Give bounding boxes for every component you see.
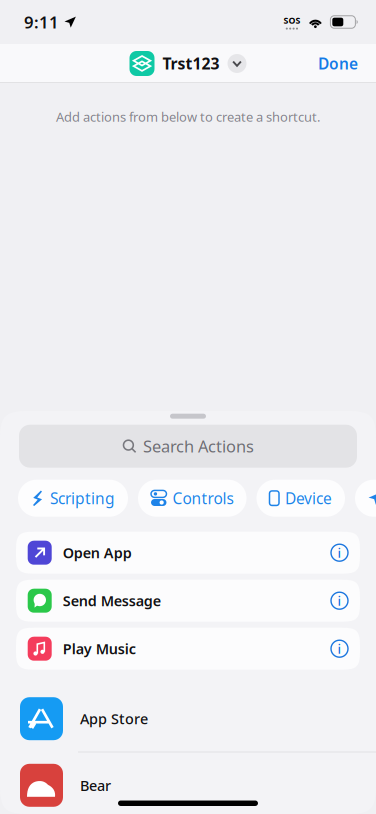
staticText: Search Actions bbox=[143, 435, 254, 457]
button[interactable]: Send Message bbox=[16, 580, 360, 622]
staticText: i bbox=[337, 544, 341, 562]
staticText: Device bbox=[285, 488, 332, 509]
button[interactable]: Done bbox=[300, 44, 376, 82]
button[interactable]: Open App bbox=[16, 532, 360, 574]
staticText: Send Message bbox=[63, 591, 161, 610]
staticText: Scripting bbox=[50, 488, 115, 509]
button[interactable]: Bear bbox=[0, 752, 376, 814]
staticText: SOS bbox=[283, 14, 300, 26]
button[interactable]: Play Music bbox=[16, 628, 360, 670]
staticText: i bbox=[337, 640, 341, 658]
button[interactable]: App Store bbox=[0, 686, 376, 752]
staticText: Play Music bbox=[63, 639, 136, 658]
button[interactable]: Search Actions bbox=[19, 425, 357, 468]
staticText: Add actions from below to create a short… bbox=[56, 108, 320, 126]
button[interactable]: Controls bbox=[138, 480, 246, 517]
button[interactable]: Trst123 bbox=[123, 44, 252, 82]
staticText: i bbox=[337, 592, 341, 610]
staticText: App Store bbox=[80, 709, 148, 728]
staticText: Controls bbox=[172, 488, 233, 509]
staticText: Done bbox=[318, 53, 358, 74]
button[interactable]: L bbox=[355, 480, 376, 517]
staticText: Open App bbox=[63, 543, 132, 562]
button[interactable]: Scripting bbox=[18, 480, 128, 517]
staticText: Trst123 bbox=[162, 53, 219, 74]
staticText: 9:11 bbox=[24, 11, 59, 33]
button[interactable]: Device bbox=[256, 480, 345, 517]
staticText: Bear bbox=[80, 775, 111, 795]
